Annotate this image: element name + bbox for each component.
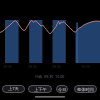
staticText: 09:30	[28, 65, 37, 69]
staticText: 整体时间	[77, 87, 94, 92]
staticText: 09:30	[81, 65, 90, 69]
staticText: 09:30	[52, 65, 61, 69]
button[interactable]: 上7天	[2, 85, 25, 93]
staticText: 上下午	[34, 87, 47, 92]
staticText: 09:30	[3, 65, 12, 69]
staticText: 今日	[58, 87, 67, 92]
button[interactable]: 今日	[56, 85, 68, 93]
button[interactable]: 整体时间	[74, 85, 97, 93]
staticText: 上7天	[8, 86, 19, 92]
button[interactable]: 上下午	[28, 85, 52, 93]
staticText: 均线 09:30 15:00	[35, 74, 65, 79]
